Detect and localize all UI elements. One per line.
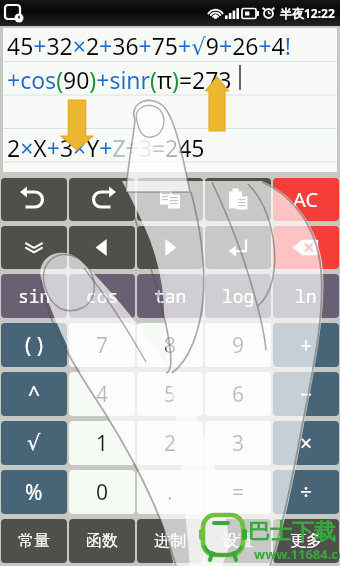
button[interactable]: cos bbox=[69, 274, 135, 318]
button[interactable]: + bbox=[273, 323, 339, 367]
button[interactable]: 1 bbox=[69, 421, 135, 465]
button[interactable]: 函数 bbox=[69, 519, 135, 563]
staticText: 3 bbox=[232, 429, 245, 458]
staticText: 7 bbox=[96, 331, 109, 360]
button[interactable]: % bbox=[1, 470, 67, 514]
staticText: 9 bbox=[232, 331, 245, 360]
button[interactable]: tan bbox=[137, 274, 203, 318]
staticText: 8 bbox=[164, 331, 177, 360]
staticText: × bbox=[300, 429, 313, 458]
staticText: +cos(90)+sinr(π)=273 bbox=[7, 64, 232, 95]
staticText: ln bbox=[295, 284, 317, 309]
button[interactable]: 更多 bbox=[273, 519, 339, 563]
staticText: = bbox=[232, 478, 245, 507]
button[interactable]: AC bbox=[273, 178, 339, 221]
staticText: + bbox=[300, 331, 313, 360]
staticText: sin bbox=[18, 284, 51, 309]
button[interactable]: 9 bbox=[205, 323, 271, 367]
button[interactable]: log bbox=[205, 274, 271, 318]
button[interactable]: 常量 bbox=[1, 519, 67, 563]
button[interactable]: 8 bbox=[137, 323, 203, 367]
staticText: 2 bbox=[164, 429, 177, 458]
button[interactable]: 7 bbox=[69, 323, 135, 367]
staticText: 45+32×2+36+75+√9+26+4! bbox=[7, 30, 291, 61]
staticText: 常量 bbox=[18, 531, 50, 551]
staticText: % bbox=[25, 478, 43, 507]
staticText: 1 bbox=[96, 429, 109, 458]
button[interactable]: 6 bbox=[205, 372, 271, 416]
staticText: − bbox=[300, 380, 313, 409]
button[interactable]: 5 bbox=[137, 372, 203, 416]
button[interactable]: Collapse bbox=[1, 226, 67, 269]
staticText: 6 bbox=[232, 380, 245, 409]
staticText: ÷ bbox=[300, 478, 313, 507]
button[interactable]: Backspace bbox=[273, 226, 339, 269]
staticText: . bbox=[167, 478, 173, 507]
button[interactable]: Copy bbox=[137, 178, 203, 221]
button[interactable]: ÷ bbox=[273, 470, 339, 514]
staticText: 函数 bbox=[86, 531, 118, 551]
button[interactable]: 3 bbox=[205, 421, 271, 465]
button[interactable]: = bbox=[205, 470, 271, 514]
button[interactable]: Enter bbox=[205, 226, 271, 269]
button[interactable]: 0 bbox=[69, 470, 135, 514]
button[interactable]: Move right bbox=[137, 226, 203, 269]
button[interactable]: Paste bbox=[205, 178, 271, 221]
staticText: 进制 bbox=[154, 531, 186, 551]
staticText: 0 bbox=[96, 478, 109, 507]
staticText: www.11684.com bbox=[254, 545, 340, 563]
button[interactable]: Undo bbox=[1, 178, 67, 221]
staticText: 5 bbox=[164, 380, 177, 409]
staticText: log bbox=[222, 284, 255, 309]
staticText: ( ) bbox=[25, 331, 44, 360]
button[interactable]: ^ bbox=[1, 372, 67, 416]
staticText: 巴士下载 bbox=[248, 518, 336, 546]
staticText: √ bbox=[27, 431, 41, 455]
button[interactable]: Redo bbox=[69, 178, 135, 221]
button[interactable]: . bbox=[137, 470, 203, 514]
staticText: 更多 bbox=[290, 531, 322, 551]
button[interactable]: 4 bbox=[69, 372, 135, 416]
button[interactable]: ln bbox=[273, 274, 339, 318]
staticText: ^ bbox=[28, 380, 41, 409]
staticText: 4 bbox=[96, 380, 109, 409]
staticText: AC bbox=[293, 186, 319, 213]
staticText: 半夜12:22 bbox=[280, 5, 335, 21]
button[interactable]: × bbox=[273, 421, 339, 465]
button[interactable]: √ bbox=[1, 421, 67, 465]
button[interactable]: sin bbox=[1, 274, 67, 318]
button[interactable]: 2 bbox=[137, 421, 203, 465]
button[interactable]: − bbox=[273, 372, 339, 416]
staticText: tan bbox=[154, 284, 187, 309]
button[interactable]: 设置 bbox=[205, 519, 271, 563]
staticText: 2×X+3×Y+Z÷3=245 bbox=[7, 132, 205, 163]
button[interactable]: Move left bbox=[69, 226, 135, 269]
button[interactable]: ( ) bbox=[1, 323, 67, 367]
staticText: 设置 bbox=[222, 531, 254, 551]
staticText: cos bbox=[86, 284, 119, 309]
button[interactable]: 进制 bbox=[137, 519, 203, 563]
